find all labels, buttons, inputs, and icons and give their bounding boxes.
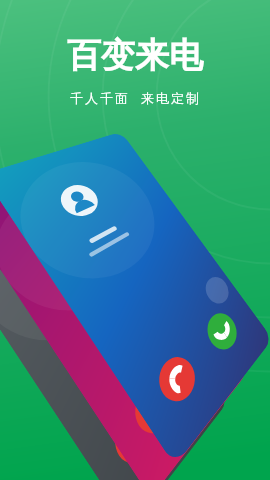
staticText: 百变来电 <box>67 34 203 77</box>
staticText: 千人千面 来电定制 <box>70 89 201 107</box>
